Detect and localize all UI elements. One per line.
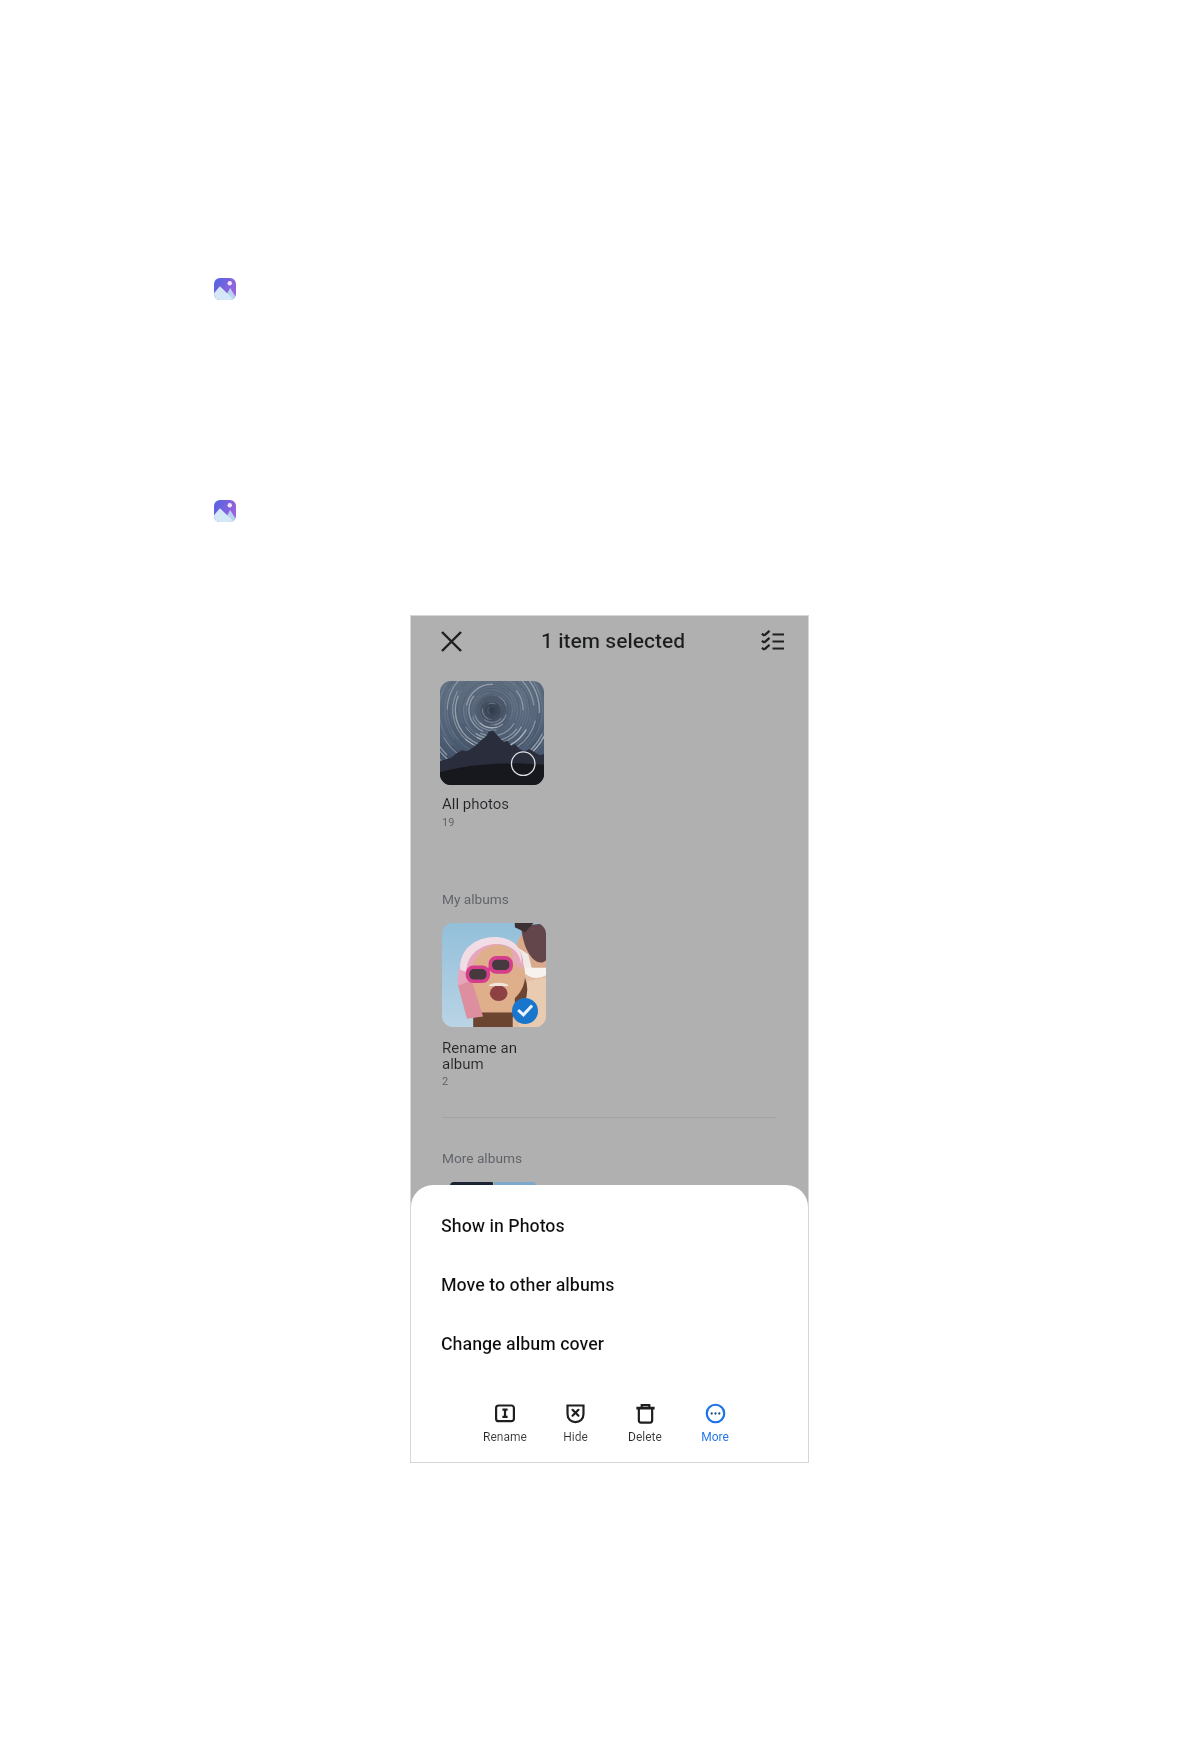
- button[interactable]: Rename an album, selected: [442, 923, 546, 1027]
- button[interactable]: Delete: [610, 1399, 680, 1444]
- button[interactable]: Rename: [470, 1399, 540, 1444]
- button[interactable]: More: [680, 1399, 750, 1444]
- button[interactable]: Select all: [754, 623, 790, 659]
- button[interactable]: Change album cover: [411, 1321, 808, 1365]
- staticText: 1 item selected: [541, 629, 686, 654]
- staticText: All photos: [442, 795, 510, 813]
- button[interactable]: Hide: [540, 1399, 610, 1444]
- button[interactable]: All photos album: [440, 681, 544, 785]
- staticText: More albums: [442, 1150, 522, 1166]
- button[interactable]: Close selection: [433, 623, 469, 659]
- staticText: Rename: [483, 1430, 527, 1444]
- staticText: 2: [442, 1075, 449, 1088]
- staticText: My albums: [442, 891, 509, 907]
- staticText: Delete: [628, 1430, 662, 1444]
- staticText: Change album cover: [441, 1333, 604, 1354]
- staticText: Move to other albums: [441, 1274, 615, 1295]
- button[interactable]: Move to other albums: [411, 1262, 808, 1306]
- staticText: Hide: [563, 1430, 588, 1444]
- staticText: 19: [442, 816, 455, 829]
- staticText: More: [701, 1430, 729, 1444]
- staticText: Rename an album: [442, 1039, 517, 1073]
- button[interactable]: Show in Photos: [411, 1203, 808, 1247]
- staticText: Show in Photos: [441, 1215, 565, 1236]
